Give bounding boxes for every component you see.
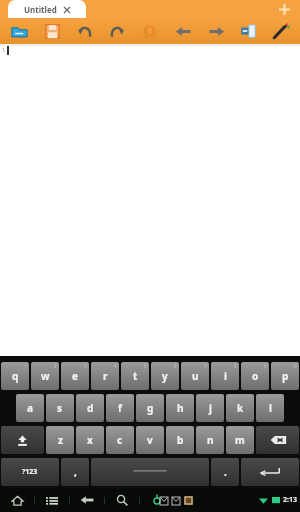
button[interactable]: Search — [111, 489, 133, 511]
staticText: Ω — [143, 20, 157, 43]
button[interactable]: Backspace — [256, 426, 299, 454]
button[interactable]: Export — [233, 18, 263, 44]
staticText: z — [58, 433, 63, 447]
staticText: t — [133, 369, 138, 383]
button[interactable]: j — [196, 394, 224, 422]
staticText: f — [118, 401, 122, 415]
staticText: 6 — [174, 363, 177, 369]
staticText: a — [27, 401, 33, 415]
staticText: 2:13 — [283, 495, 297, 505]
button[interactable]: Recent apps — [41, 489, 63, 511]
button[interactable]: p — [271, 362, 299, 390]
staticText: 1 — [24, 363, 27, 369]
staticText: p — [282, 369, 289, 383]
staticText: e — [72, 369, 78, 383]
button[interactable]: e — [61, 362, 89, 390]
button[interactable]: Home — [6, 489, 28, 511]
staticText: 4 — [114, 363, 117, 369]
staticText: v — [147, 433, 153, 447]
button[interactable]: x — [76, 426, 104, 454]
staticText: u — [192, 369, 199, 383]
button[interactable]: Screenshot — [146, 489, 168, 511]
button[interactable]: Undo — [70, 18, 100, 44]
button[interactable]: v — [136, 426, 164, 454]
staticText: 1 — [2, 46, 6, 54]
button[interactable]: Previous — [168, 18, 198, 44]
button[interactable]: g — [136, 394, 164, 422]
button[interactable]: h — [166, 394, 194, 422]
staticText: n — [207, 433, 214, 447]
staticText: y — [162, 369, 168, 383]
staticText: o — [252, 369, 259, 383]
button[interactable]: z — [46, 426, 74, 454]
button[interactable]: w — [31, 362, 59, 390]
staticText: l — [269, 401, 272, 415]
button[interactable]: Tools — [266, 18, 296, 44]
button[interactable]: i — [211, 362, 239, 390]
button[interactable]: Space — [91, 458, 209, 486]
button[interactable]: Open — [4, 18, 34, 44]
button[interactable]: Back — [76, 489, 98, 511]
button[interactable]: c — [106, 426, 134, 454]
staticText: j — [209, 401, 212, 415]
staticText: m — [235, 433, 245, 447]
staticText: d — [87, 401, 94, 415]
staticText: i — [224, 369, 227, 383]
staticText: w — [41, 369, 50, 383]
staticText: 7 — [204, 363, 207, 369]
staticText: k — [237, 401, 244, 415]
button[interactable]: y — [151, 362, 179, 390]
staticText: 9 — [264, 363, 267, 369]
staticText: 5 — [144, 363, 147, 369]
staticText: 8 — [234, 363, 237, 369]
button[interactable]: k — [226, 394, 254, 422]
button[interactable]: b — [166, 426, 194, 454]
staticText: 0 — [294, 363, 297, 369]
button[interactable]: New tab — [276, 1, 292, 17]
button[interactable]: s — [46, 394, 74, 422]
button[interactable]: o — [241, 362, 269, 390]
button[interactable]: l — [256, 394, 284, 422]
button[interactable]: Save — [37, 18, 67, 44]
button[interactable]: Shift — [1, 426, 44, 454]
staticText: 3 — [84, 363, 87, 369]
staticText: r — [103, 369, 108, 383]
button[interactable]: Enter — [241, 458, 299, 486]
staticText: b — [177, 433, 184, 447]
staticText: g — [147, 401, 154, 415]
staticText: , — [74, 465, 77, 479]
button[interactable]: d — [76, 394, 104, 422]
button[interactable]: f — [106, 394, 134, 422]
button[interactable]: q — [1, 362, 29, 390]
button[interactable]: Close tab — [64, 7, 70, 13]
staticText: q — [12, 369, 19, 383]
staticText: . — [224, 465, 227, 479]
staticText: 2 — [54, 363, 57, 369]
staticText: Untitled — [24, 4, 57, 15]
staticText: s — [57, 401, 63, 415]
button[interactable]: n — [196, 426, 224, 454]
button[interactable]: Next — [201, 18, 231, 44]
button[interactable]: t — [121, 362, 149, 390]
staticText: c — [117, 433, 123, 447]
button[interactable]: ?123 — [1, 458, 59, 486]
staticText: ?123 — [22, 467, 38, 477]
button[interactable]: Redo — [102, 18, 132, 44]
button[interactable]: , — [61, 458, 89, 486]
staticText: x — [87, 433, 93, 447]
button[interactable]: u — [181, 362, 209, 390]
button[interactable]: Untitled — [8, 0, 86, 18]
button[interactable]: a — [16, 394, 44, 422]
button[interactable]: r — [91, 362, 119, 390]
button[interactable]: Special characters — [135, 18, 165, 44]
button[interactable]: m — [226, 426, 254, 454]
button[interactable]: . — [211, 458, 239, 486]
staticText: h — [177, 401, 184, 415]
